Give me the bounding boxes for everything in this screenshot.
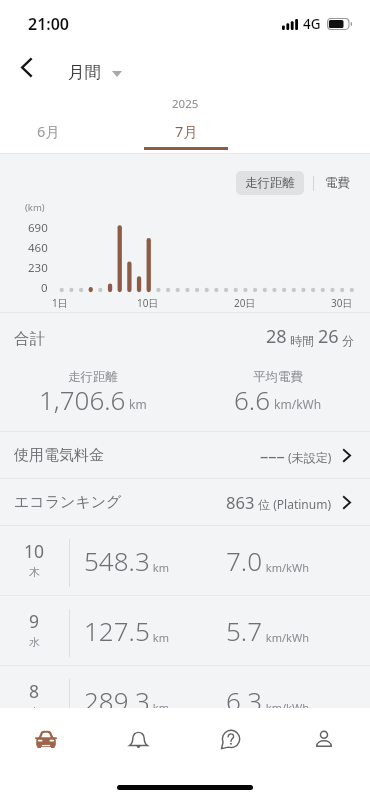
staticText: 460 xyxy=(28,240,48,256)
staticText: 走行距離 xyxy=(245,175,295,191)
button[interactable]: 月間 xyxy=(66,60,124,85)
button[interactable]: Account xyxy=(277,708,370,770)
staticText: 6.6 xyxy=(234,382,271,417)
staticText: 1,706.6 xyxy=(39,382,126,417)
staticText: 548.3 xyxy=(84,543,150,578)
staticText: 水 xyxy=(29,635,40,649)
staticText: 火 xyxy=(29,705,40,719)
button[interactable]: Help xyxy=(184,708,277,770)
button[interactable]: エコランキング xyxy=(0,479,370,525)
staticText: 6.3 xyxy=(226,683,263,718)
staticText: 127.5 xyxy=(84,613,150,648)
button[interactable]: 電費 xyxy=(323,171,352,195)
staticText: km xyxy=(150,630,170,645)
staticText: 2025 xyxy=(172,96,199,112)
staticText: 分 xyxy=(339,332,355,348)
button[interactable]: 走行距離 xyxy=(236,171,304,195)
staticText: 4G xyxy=(303,15,321,33)
staticText: km xyxy=(150,700,170,715)
button[interactable]: Vehicle xyxy=(0,708,92,770)
staticText: 合計 xyxy=(14,329,45,349)
button[interactable]: Notifications xyxy=(92,708,184,770)
staticText: km/kWh xyxy=(271,396,322,412)
staticText: 平均電費 xyxy=(253,369,303,385)
staticText: 9 xyxy=(29,609,40,633)
button[interactable]: 6月 xyxy=(2,121,94,153)
button[interactable]: 8 xyxy=(0,666,370,735)
staticText: 時間 xyxy=(287,332,318,348)
staticText: 8 xyxy=(29,679,40,703)
staticText: 木 xyxy=(29,565,40,579)
staticText: 0 xyxy=(41,280,48,296)
staticText: 230 xyxy=(28,260,48,276)
staticText: (未設定) xyxy=(285,449,332,465)
staticText: 30日 xyxy=(331,296,353,310)
staticText: 26 xyxy=(318,324,339,349)
staticText: 1日 xyxy=(52,296,68,310)
staticText: 10 xyxy=(24,539,45,563)
staticText: 6月 xyxy=(37,121,60,141)
staticText: 7.0 xyxy=(226,543,263,578)
staticText: 7月 xyxy=(175,121,198,141)
staticText: 289.3 xyxy=(84,683,150,718)
staticText: km xyxy=(126,396,147,412)
button[interactable]: 7月 xyxy=(140,121,232,153)
button[interactable]: 10 xyxy=(0,526,370,595)
staticText: エコランキング xyxy=(14,493,122,512)
staticText: 690 xyxy=(28,220,48,236)
staticText: (km) xyxy=(25,201,45,214)
staticText: km/kWh xyxy=(263,560,310,575)
staticText: km xyxy=(150,560,170,575)
staticText: ––– xyxy=(260,444,285,466)
staticText: 21:00 xyxy=(28,13,70,35)
staticText: 28 xyxy=(266,324,287,349)
staticText: 20日 xyxy=(234,296,256,310)
staticText: 位 (Platinum) xyxy=(255,496,332,512)
staticText: 使用電気料金 xyxy=(14,446,104,465)
staticText: 10日 xyxy=(137,296,159,310)
button[interactable]: Back xyxy=(6,47,46,87)
staticText: km/kWh xyxy=(263,630,310,645)
staticText: 走行距離 xyxy=(68,369,118,385)
staticText: km/kWh xyxy=(263,700,310,715)
staticText: 863 xyxy=(226,491,255,513)
button[interactable]: 使用電気料金 xyxy=(0,432,370,478)
staticText: 電費 xyxy=(325,175,350,191)
button[interactable]: 9 xyxy=(0,596,370,665)
staticText: 5.7 xyxy=(226,613,263,648)
staticText: 月間 xyxy=(68,62,101,83)
